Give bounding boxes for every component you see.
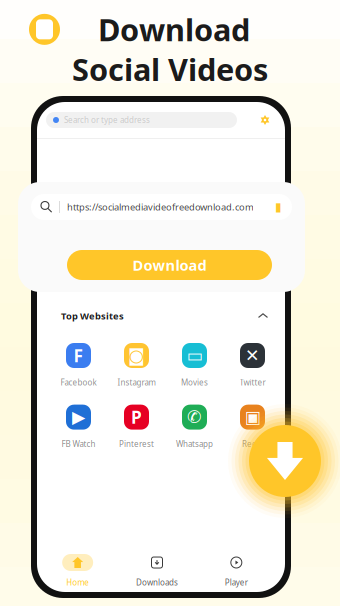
staticText: Player (225, 577, 248, 588)
staticText: Downloads (136, 577, 178, 588)
staticText: Instagram (117, 377, 155, 388)
staticText: F (73, 344, 83, 367)
staticText: ▮ (275, 200, 282, 214)
staticText: ▶ (72, 407, 85, 427)
button[interactable]: ✕ (223, 343, 281, 388)
staticText: Facebook (60, 377, 96, 388)
staticText: Twitter (239, 377, 265, 388)
button[interactable]: Home (38, 554, 117, 588)
staticText: Download (98, 9, 250, 50)
staticText: Search or type address (64, 115, 150, 125)
staticText: Download (132, 255, 206, 275)
staticText: Top Websites (61, 310, 124, 322)
button[interactable]: ▶ (49, 405, 107, 449)
staticText: Movies (181, 377, 208, 388)
button[interactable]: Download (67, 250, 272, 280)
button[interactable]: F (49, 343, 107, 388)
button[interactable]: Player (197, 554, 276, 588)
staticText: Reels (242, 439, 263, 449)
staticText: P (131, 406, 142, 429)
button[interactable]: ✆ (165, 405, 223, 449)
staticText: ▣ (244, 407, 260, 427)
button[interactable]: Downloads (117, 554, 197, 588)
button[interactable]: ◙ (107, 343, 165, 388)
button[interactable]: Collapse Top Websites (256, 309, 270, 323)
staticText: Whatsapp (176, 439, 213, 449)
button[interactable]: P (107, 405, 165, 449)
staticText: Pinterest (119, 439, 154, 449)
staticText: https://socialmediavideofreedownload.com (67, 201, 254, 213)
staticText: Social Videos (72, 49, 268, 89)
staticText: Home (66, 577, 89, 588)
staticText: ✆ (187, 407, 202, 427)
staticText: ◙ (128, 346, 145, 365)
button[interactable]: Settings (259, 114, 271, 126)
button[interactable]: ▭ (165, 343, 223, 388)
staticText: ▭ (186, 346, 202, 365)
staticText: FB Watch (61, 439, 95, 449)
staticText: ✕ (245, 346, 260, 365)
button[interactable]: ▣ (223, 405, 281, 449)
